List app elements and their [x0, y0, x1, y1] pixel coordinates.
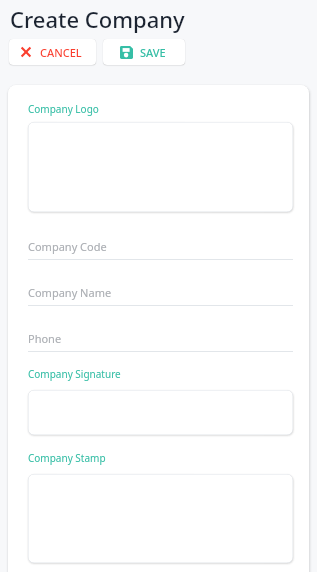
staticText: Company Logo [28, 102, 99, 116]
staticText: CANCEL [40, 45, 82, 60]
button[interactable]: SAVE [103, 39, 185, 65]
button[interactable]: Company Code [28, 236, 293, 260]
staticText: Company Signature [28, 367, 121, 381]
staticText: Company Name [28, 285, 112, 300]
staticText: SAVE [140, 45, 166, 60]
button[interactable]: Company Name [28, 282, 293, 306]
button[interactable]: Phone [28, 328, 293, 352]
staticText: Company Stamp [28, 451, 106, 465]
staticText: Phone [28, 331, 62, 346]
staticText: Create Company [10, 4, 185, 34]
button[interactable]: CANCEL [9, 39, 96, 65]
button[interactable]: Company Signature [28, 390, 293, 435]
staticText: Company Code [28, 239, 107, 254]
